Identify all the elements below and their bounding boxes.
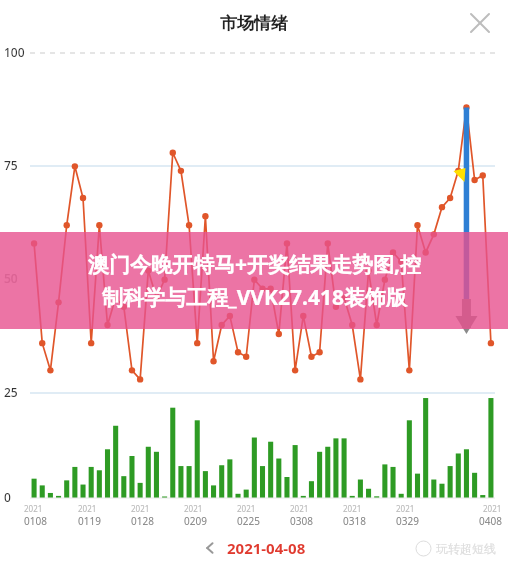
staticText: 2021 [396, 503, 415, 514]
staticText: 澳门今晚开特马+开奖结果走势图,控 [88, 250, 421, 279]
button[interactable]: Previous day [193, 534, 316, 562]
other: Previous day [203, 541, 217, 555]
staticText: 100 [4, 44, 25, 60]
staticText: 0329 [396, 514, 419, 528]
staticText: 2021 [78, 503, 97, 514]
staticText: 2021 [237, 503, 256, 514]
staticText: 0128 [131, 514, 154, 528]
staticText: 50 [4, 270, 18, 286]
staticText: 2021 [131, 503, 150, 514]
staticText: 2021 [483, 503, 502, 514]
staticText: 0119 [78, 514, 101, 528]
staticText: 75 [4, 157, 18, 173]
staticText: 0 [4, 489, 11, 505]
staticText: 0318 [343, 514, 366, 528]
staticText: 2021 [184, 503, 203, 514]
staticText: 0408 [479, 514, 502, 528]
staticText: 市场情绪 [220, 13, 288, 34]
staticText: 制科学与工程_VVK27.418装饰版 [102, 283, 407, 312]
button[interactable]: Close [460, 3, 500, 43]
staticText: 25 [4, 384, 18, 400]
staticText: 0108 [24, 514, 47, 528]
staticText: 0308 [290, 514, 313, 528]
staticText: 0209 [184, 514, 207, 528]
staticText: 玩转超短线 [436, 541, 496, 556]
staticText: 2021 [343, 503, 362, 514]
staticText: 0225 [237, 514, 260, 528]
staticText: 2021-04-08 [227, 538, 306, 558]
staticText: 2021 [290, 503, 309, 514]
staticText: 2021 [24, 503, 43, 514]
